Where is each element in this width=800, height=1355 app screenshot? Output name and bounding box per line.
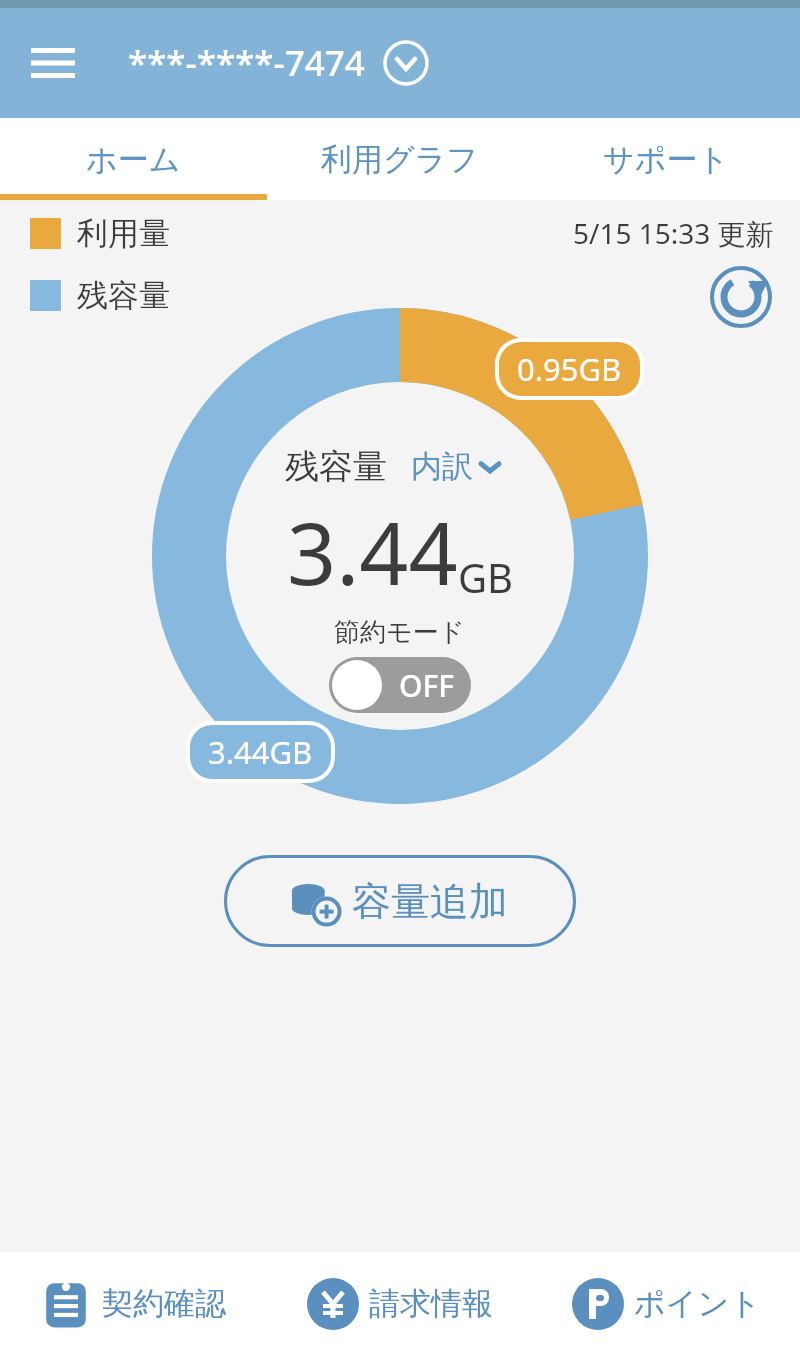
- staticText: 残容量: [285, 445, 387, 488]
- button[interactable]: ポイント: [533, 1252, 800, 1355]
- staticText: 請求情報: [369, 1284, 493, 1323]
- staticText: 0.95GB: [517, 348, 622, 390]
- button[interactable]: ホーム: [0, 118, 266, 200]
- button[interactable]: サポート: [533, 118, 800, 200]
- staticText: 利用量: [77, 214, 170, 253]
- staticText: 節約モード: [334, 616, 466, 649]
- staticText: 利用グラフ: [321, 140, 479, 179]
- staticText: 内訳: [411, 447, 473, 486]
- button[interactable]: 節約モード OFF: [329, 657, 471, 713]
- button[interactable]: 容量追加: [224, 855, 576, 947]
- staticText: 3.44GB: [208, 731, 313, 773]
- staticText: 契約確認: [102, 1284, 226, 1323]
- staticText: GB: [458, 550, 514, 604]
- staticText: ポイント: [634, 1284, 761, 1323]
- button[interactable]: Menu: [20, 30, 86, 96]
- staticText: ホーム: [86, 140, 181, 179]
- staticText: 残容量: [77, 276, 170, 315]
- staticText: ***-****-7474: [128, 39, 365, 87]
- button[interactable]: 内訳: [397, 444, 515, 489]
- staticText: OFF: [399, 665, 455, 706]
- button[interactable]: 請求情報: [266, 1252, 533, 1355]
- staticText: 容量追加: [352, 877, 508, 926]
- button[interactable]: Switch account: [381, 38, 431, 88]
- button[interactable]: Refresh: [708, 264, 774, 330]
- button[interactable]: 利用グラフ: [266, 118, 533, 200]
- staticText: サポート: [603, 140, 730, 179]
- button[interactable]: 契約確認: [0, 1252, 266, 1355]
- staticText: 5/15 15:33 更新: [573, 214, 774, 252]
- staticText: 3.44: [287, 493, 458, 610]
